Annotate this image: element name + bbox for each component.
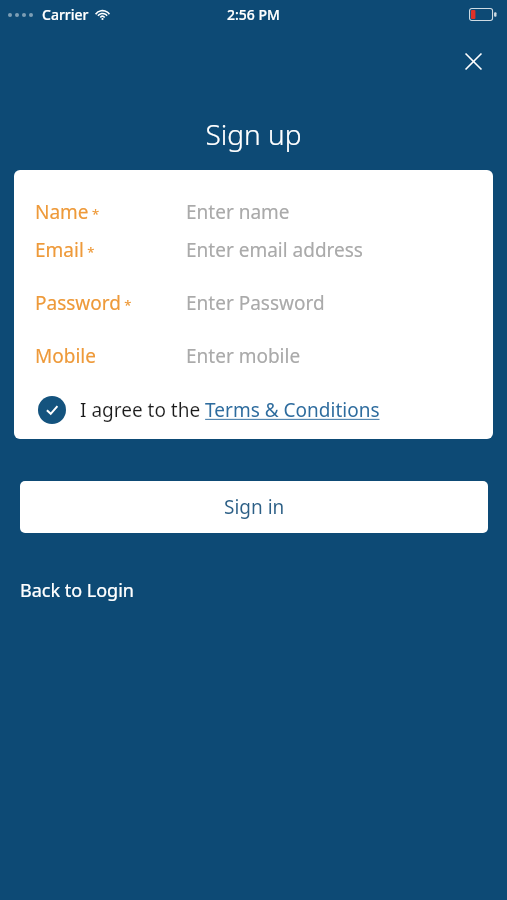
staticText: Password * [35, 290, 132, 316]
staticText: Back to Login [20, 578, 134, 603]
staticText: Sign up [0, 115, 507, 153]
button[interactable]: Close [452, 40, 494, 82]
staticText: Carrier [42, 5, 89, 24]
staticText: 2:56 PM [227, 5, 280, 24]
button[interactable]: Mobile [14, 329, 493, 382]
staticText: Name * [35, 199, 100, 223]
staticText: Mobile [35, 343, 96, 369]
button[interactable]: I agree to the Terms & Conditions [14, 383, 493, 437]
staticText: Enter mobile [186, 343, 301, 369]
button[interactable]: Sign in [20, 481, 488, 533]
staticText: Sign in [224, 494, 285, 520]
button[interactable]: Password * [14, 276, 493, 329]
button[interactable]: Back to Login [20, 572, 134, 608]
staticText: Email * [35, 237, 95, 263]
staticText: I agree to the Terms & Conditions [80, 397, 380, 423]
staticText: Enter email address [186, 237, 363, 263]
button[interactable]: Email * [14, 223, 493, 276]
staticText: Enter name [186, 199, 290, 223]
staticText: Enter Password [186, 290, 325, 316]
button[interactable]: Name * [14, 199, 493, 223]
